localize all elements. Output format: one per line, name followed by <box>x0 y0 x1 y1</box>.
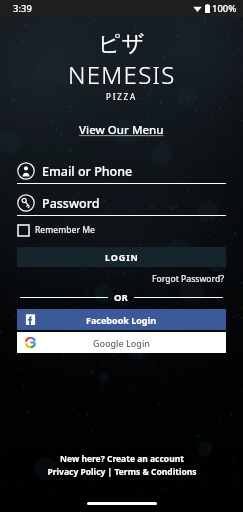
staticText: NEMESIS <box>68 58 176 91</box>
button[interactable]: Google Login <box>17 332 226 353</box>
staticText: Google Login <box>93 337 151 349</box>
staticText: 100% <box>212 2 237 15</box>
staticText: Privacy Policy | Terms & Conditions <box>47 466 197 478</box>
button[interactable]: Password <box>17 194 226 216</box>
staticText: ピザ <box>98 30 146 58</box>
staticText: 3:39 <box>13 2 32 15</box>
button[interactable]: View Our Menu <box>73 120 170 140</box>
button[interactable]: LOGIN <box>17 247 226 267</box>
staticText: Facebook Login <box>86 314 157 326</box>
button[interactable]: Forgot Password? <box>150 271 226 287</box>
staticText: Password <box>42 195 100 212</box>
button[interactable]: New here? Create an account <box>60 453 184 465</box>
staticText: Email or Phone <box>42 163 133 180</box>
staticText: View Our Menu <box>79 122 164 138</box>
button[interactable]: Email or Phone <box>17 162 226 184</box>
staticText: OR <box>114 291 128 304</box>
button[interactable]: Privacy Policy | Terms & Conditions <box>47 466 197 478</box>
button[interactable]: Remember Me <box>17 222 96 238</box>
staticText: LOGIN <box>105 251 139 263</box>
staticText: New here? Create an account <box>60 453 184 465</box>
staticText: Forgot Password? <box>152 273 224 285</box>
staticText: PIZZA <box>106 91 137 102</box>
staticText: Remember Me <box>35 224 95 236</box>
button[interactable]: Facebook Login <box>17 309 226 330</box>
